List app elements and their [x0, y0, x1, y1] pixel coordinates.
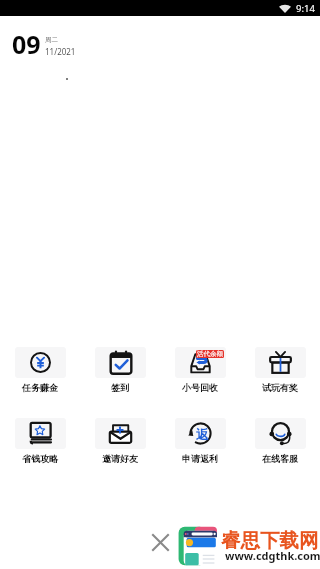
button[interactable]: 睿思下载网 — [177, 526, 221, 566]
staticText: 09 — [12, 27, 41, 61]
button[interactable]: 任务赚金 — [0, 347, 80, 393]
staticText: 睿思下载网 — [221, 528, 319, 553]
staticText: 返 — [196, 426, 209, 442]
staticText: 9:14 — [296, 2, 315, 15]
staticText: 活代余额 — [197, 350, 223, 358]
staticText: 小号回收 — [182, 382, 218, 393]
staticText: 申请返利 — [182, 453, 218, 464]
staticText: 在线客服 — [262, 453, 298, 464]
staticText: 任务赚金 — [22, 382, 58, 393]
staticText: www.cdgthk.com — [225, 548, 320, 563]
button[interactable]: 省钱攻略 — [0, 418, 80, 464]
button[interactable]: 活代余额 — [160, 347, 240, 393]
staticText: 试玩有奖 — [262, 382, 298, 393]
staticText: 邀请好友 — [102, 453, 138, 464]
staticText: 11/2021 — [45, 46, 76, 57]
button[interactable]: 试玩有奖 — [240, 347, 320, 393]
staticText: 周二 — [45, 36, 58, 44]
staticText: 签到 — [111, 382, 129, 393]
staticText: 睿思下载网 — [221, 528, 319, 553]
button[interactable]: 邀请好友 — [80, 418, 160, 464]
button[interactable]: Close — [147, 529, 173, 555]
button[interactable]: 签到 — [80, 347, 160, 393]
button[interactable]: 返 — [160, 418, 240, 464]
staticText: 省钱攻略 — [22, 453, 58, 464]
button[interactable]: 在线客服 — [240, 418, 320, 464]
